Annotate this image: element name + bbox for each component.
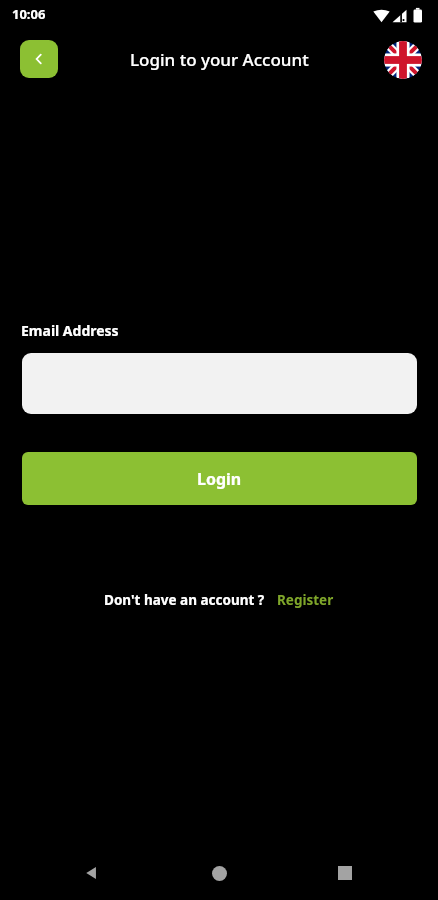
button[interactable]: Home (199, 853, 239, 893)
button[interactable] (22, 353, 417, 414)
button[interactable]: Back (72, 853, 112, 893)
button[interactable]: Back (20, 40, 58, 78)
staticText: Don't have an account ? (104, 591, 265, 609)
staticText: Email Address (21, 321, 119, 340)
button[interactable]: Change language (384, 41, 422, 79)
staticText: Register (277, 591, 334, 609)
button[interactable]: Register (277, 591, 334, 609)
staticText: Login to your Account (130, 48, 309, 71)
button[interactable]: Recent apps (325, 853, 365, 893)
staticText: 10:06 (12, 5, 46, 23)
button[interactable]: Login (22, 452, 417, 505)
staticText: Login (197, 468, 242, 490)
